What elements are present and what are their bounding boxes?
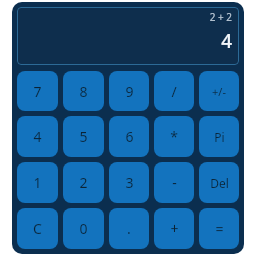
button[interactable]: = [199, 208, 239, 249]
button[interactable]: 8 [63, 71, 104, 111]
staticText: 2 + 2 [209, 10, 232, 24]
button[interactable]: 4 [17, 116, 58, 157]
staticText: C [33, 219, 42, 238]
staticText: +/- [212, 84, 226, 99]
button[interactable]: 0 [63, 208, 104, 249]
staticText: * [170, 127, 178, 146]
button[interactable]: +/- [199, 71, 239, 111]
button[interactable]: 3 [109, 162, 149, 203]
button[interactable]: 2 + 2 [17, 7, 239, 65]
button[interactable]: 2 [63, 162, 104, 203]
button[interactable]: * [154, 116, 194, 157]
staticText: = [215, 219, 224, 238]
staticText: 5 [79, 127, 88, 146]
button[interactable]: C [17, 208, 58, 249]
staticText: 4 [33, 127, 42, 146]
button[interactable]: 9 [109, 71, 149, 111]
staticText: 6 [125, 127, 134, 146]
staticText: 0 [79, 219, 88, 238]
button[interactable]: / [154, 71, 194, 111]
staticText: 1 [33, 173, 42, 192]
staticText: 3 [125, 173, 134, 192]
staticText: / [171, 82, 177, 101]
staticText: 4 [221, 28, 232, 54]
staticText: 2 [79, 173, 88, 192]
staticText: - [172, 173, 177, 192]
staticText: Del [210, 175, 229, 191]
button[interactable]: + [154, 208, 194, 249]
staticText: 8 [79, 82, 88, 101]
button[interactable]: 1 [17, 162, 58, 203]
button[interactable]: Del [199, 162, 239, 203]
button[interactable]: . [109, 208, 149, 249]
button[interactable]: 6 [109, 116, 149, 157]
button[interactable]: 5 [63, 116, 104, 157]
button[interactable]: 7 [17, 71, 58, 111]
staticText: 7 [33, 82, 42, 101]
staticText: + [170, 219, 179, 238]
staticText: 9 [125, 82, 134, 101]
staticText: . [127, 219, 131, 238]
button[interactable]: - [154, 162, 194, 203]
staticText: Pi [214, 129, 225, 145]
button[interactable]: Pi [199, 116, 239, 157]
